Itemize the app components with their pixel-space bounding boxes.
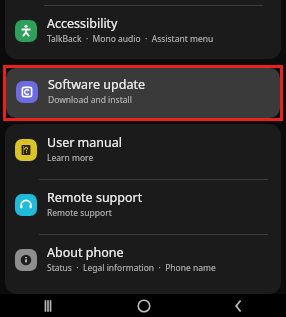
button[interactable]: Software update: [6, 68, 280, 118]
staticText: Download and install: [48, 94, 132, 106]
staticText: Software update: [48, 76, 145, 93]
button[interactable]: About phone: [5, 235, 281, 289]
button[interactable]: Remote support: [5, 180, 281, 234]
staticText: TalkBack · Mono audio · Assistant menu: [47, 33, 214, 45]
staticText: Remote support: [47, 189, 143, 206]
staticText: Accessibility: [47, 15, 118, 32]
button[interactable]: Home: [96, 294, 191, 317]
staticText: About phone: [47, 244, 124, 261]
button[interactable]: Recent apps: [0, 294, 96, 317]
staticText: Remote support: [47, 207, 112, 219]
staticText: User manual: [47, 134, 122, 151]
button[interactable]: Back: [191, 294, 286, 317]
staticText: Learn more: [47, 152, 94, 164]
staticText: Status · Legal information · Phone name: [47, 262, 216, 274]
button[interactable]: User manual: [5, 124, 281, 179]
